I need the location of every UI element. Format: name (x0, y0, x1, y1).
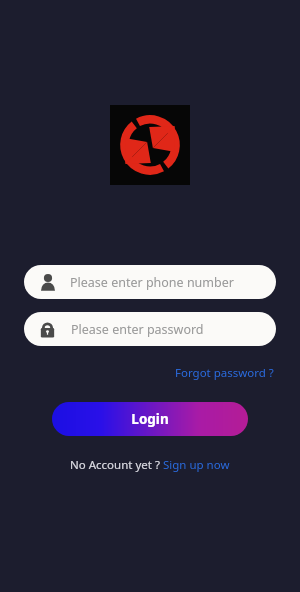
staticText: Sign up now (163, 457, 230, 473)
button[interactable]: Sign up now (163, 457, 230, 473)
button[interactable]: Please enter phone number (24, 265, 276, 299)
staticText: Please enter phone number (70, 274, 234, 291)
staticText: Login (131, 410, 169, 428)
button[interactable]: Forgot password ? (173, 363, 276, 383)
button[interactable]: Login (52, 402, 248, 436)
staticText: Please enter password (71, 321, 204, 338)
staticText: Forgot password ? (175, 365, 274, 381)
button[interactable]: Please enter password (24, 312, 276, 346)
staticText: No Account yet ? (70, 457, 163, 473)
